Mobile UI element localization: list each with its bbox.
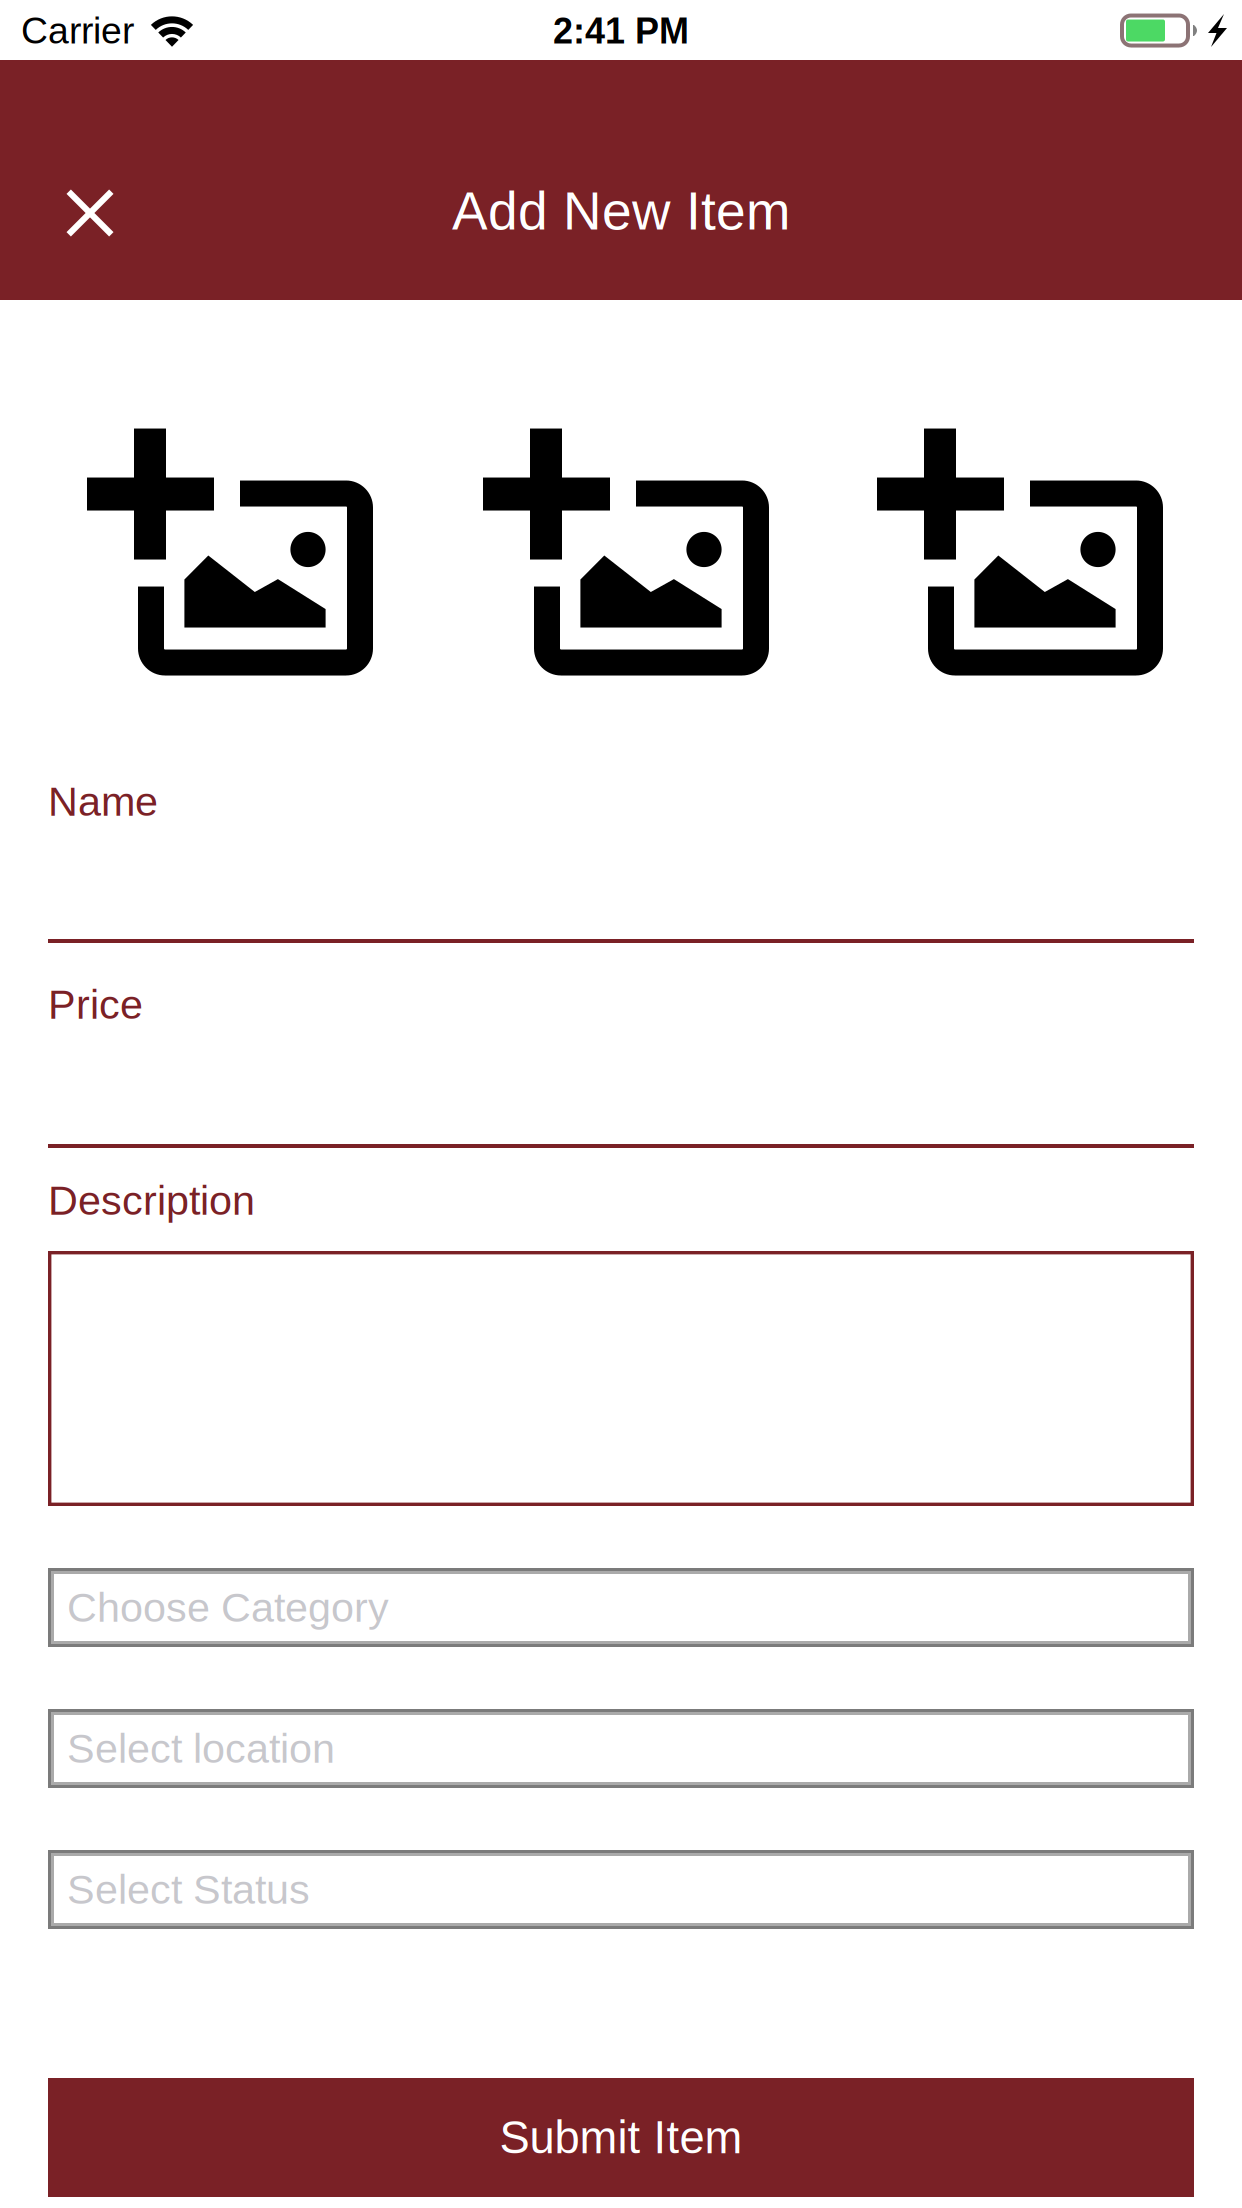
button[interactable]: Add third photo: [877, 428, 1164, 678]
button[interactable]: Description: [48, 1178, 1194, 1506]
staticText: Select Status: [67, 1866, 310, 1913]
button[interactable]: Select Status: [48, 1850, 1194, 1929]
button[interactable]: Add second photo: [483, 428, 770, 678]
staticText: 2:41 PM: [553, 11, 689, 51]
staticText: Submit Item: [499, 2112, 742, 2163]
button[interactable]: Name: [48, 779, 1194, 943]
staticText: Price: [48, 981, 143, 1028]
staticText: Carrier: [21, 10, 134, 51]
button[interactable]: Select location: [48, 1709, 1194, 1788]
staticText: Name: [48, 778, 158, 825]
button[interactable]: Price: [48, 982, 1194, 1148]
staticText: Choose Category: [67, 1584, 389, 1631]
staticText: Description: [48, 1177, 255, 1224]
button[interactable]: Submit Item: [48, 2078, 1194, 2197]
staticText: Select location: [67, 1725, 335, 1772]
staticText: Add New Item: [452, 181, 790, 241]
button[interactable]: Add first photo: [87, 428, 374, 678]
button[interactable]: Choose Category: [48, 1568, 1194, 1647]
button[interactable]: Close: [58, 177, 122, 245]
